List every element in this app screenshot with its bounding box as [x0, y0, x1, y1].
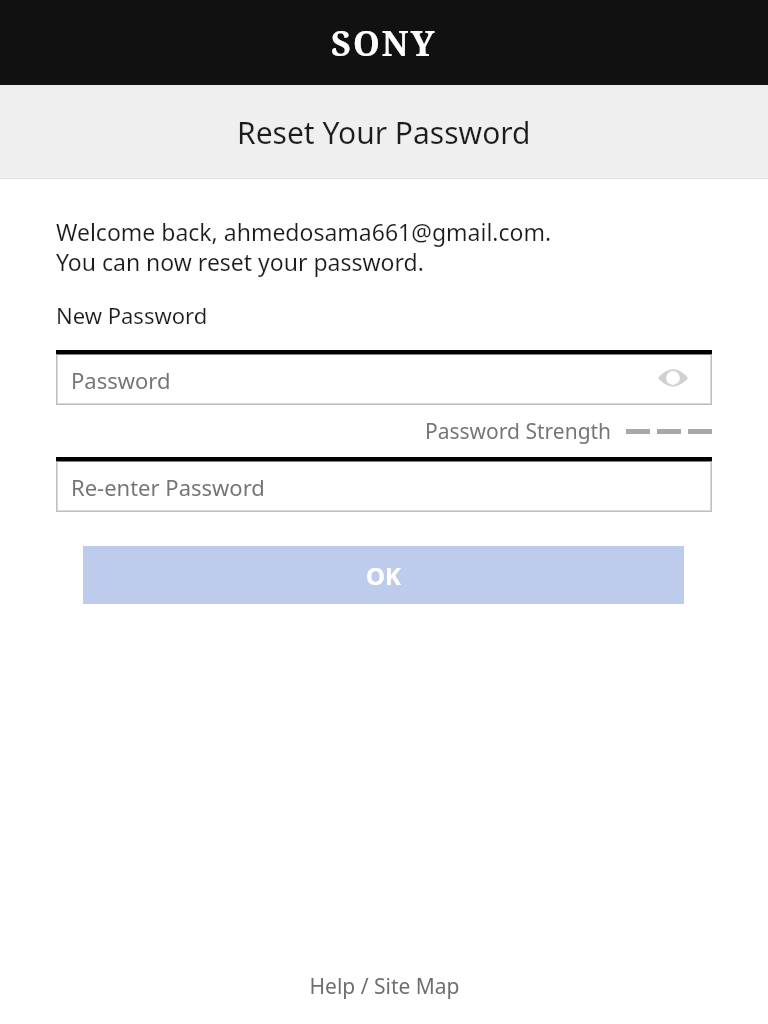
button[interactable]: Help / Site Map: [299, 968, 470, 1005]
button[interactable]: Show password: [656, 361, 690, 395]
staticText: Password Strength: [425, 417, 612, 446]
button[interactable]: Re-enter Password: [56, 457, 712, 512]
staticText: Re-enter Password: [71, 472, 265, 502]
staticText: Help / Site Map: [309, 972, 460, 1001]
staticText: OK: [366, 559, 401, 592]
staticText: Password: [71, 365, 171, 395]
staticText: SONY: [331, 20, 437, 66]
staticText: New Password: [56, 300, 208, 330]
staticText: Welcome back, ahmedosama661@gmail.com. Y…: [56, 216, 552, 278]
button[interactable]: OK: [83, 546, 684, 604]
button[interactable]: Sony home: [323, 16, 445, 70]
button[interactable]: Password: [56, 350, 712, 405]
staticText: Reset Your Password: [237, 112, 531, 153]
